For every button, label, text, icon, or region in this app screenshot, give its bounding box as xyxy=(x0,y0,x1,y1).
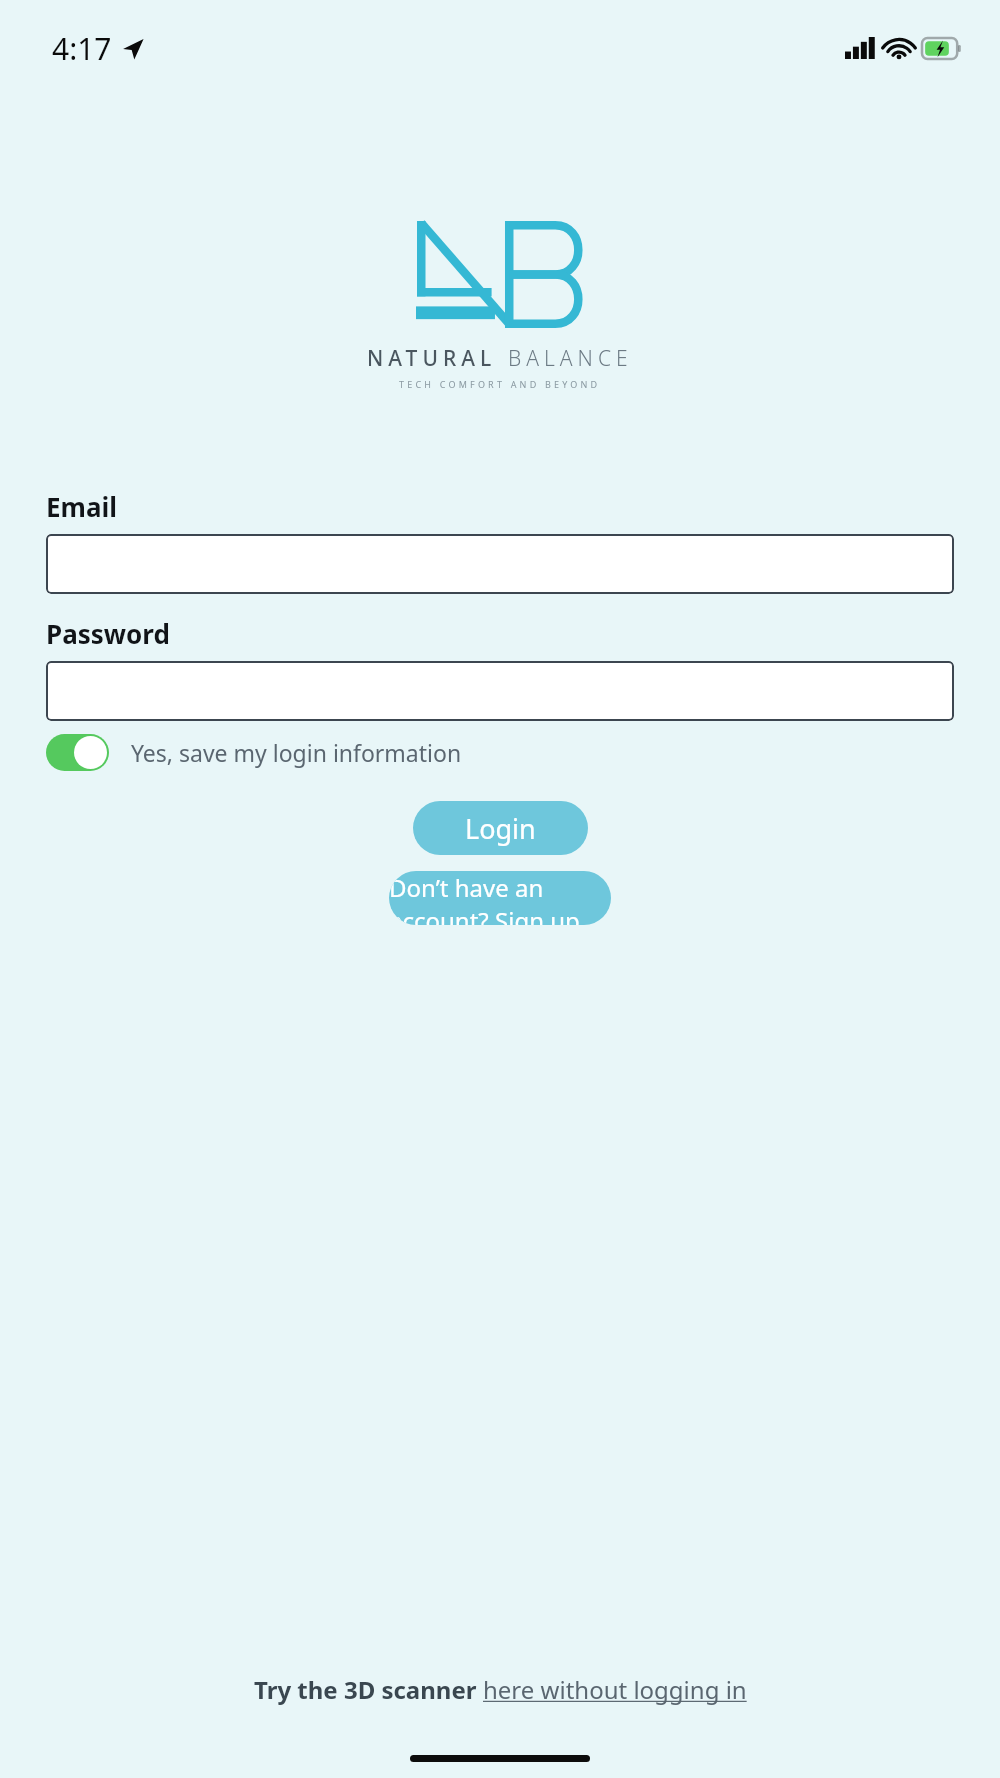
staticText: 4:17 xyxy=(52,28,112,69)
button[interactable]: Login xyxy=(413,801,588,855)
staticText: Email xyxy=(46,489,118,524)
staticText: Password xyxy=(46,616,170,651)
staticText: Login xyxy=(465,810,536,847)
button[interactable] xyxy=(46,661,954,721)
button[interactable]: Save login information toggle xyxy=(46,734,109,771)
staticText: Try the 3D scanner xyxy=(254,1673,483,1706)
button[interactable]: here without logging in xyxy=(483,1673,747,1706)
button[interactable]: Don’t have an account? Sign up xyxy=(389,871,611,925)
staticText: Yes, save my login information xyxy=(131,737,462,768)
staticText: here without logging in xyxy=(483,1673,747,1706)
staticText: Don’t have an account? Sign up xyxy=(389,871,611,925)
staticText: NATURAL xyxy=(367,344,497,373)
staticText: BALANCE xyxy=(508,344,633,373)
button[interactable] xyxy=(46,534,954,594)
staticText: TECH COMFORT AND BEYOND xyxy=(399,378,601,390)
